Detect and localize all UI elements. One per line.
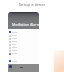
button[interactable] bbox=[9, 52, 21, 55]
staticText: Mediation Alarm bbox=[12, 22, 39, 27]
button[interactable] bbox=[9, 34, 21, 37]
button[interactable] bbox=[9, 49, 21, 52]
button[interactable] bbox=[9, 30, 21, 34]
button[interactable]: Profile bbox=[9, 65, 12, 68]
button[interactable] bbox=[9, 46, 21, 49]
button[interactable] bbox=[9, 43, 21, 46]
button[interactable] bbox=[9, 40, 21, 43]
button[interactable] bbox=[9, 37, 21, 40]
staticText: Setup a timer bbox=[0, 2, 64, 8]
button[interactable] bbox=[9, 59, 21, 63]
